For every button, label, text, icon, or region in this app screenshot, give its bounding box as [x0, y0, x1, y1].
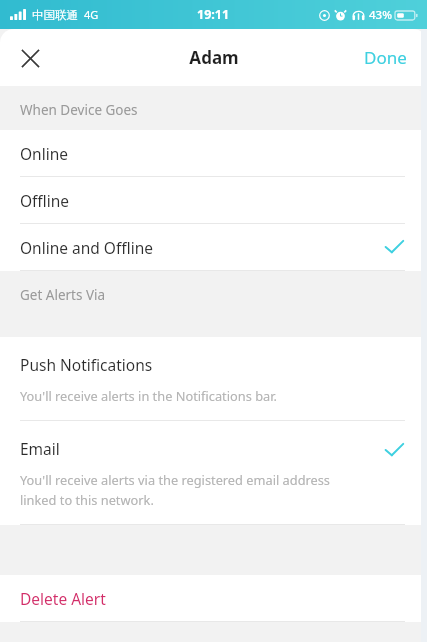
button[interactable]: Online and Offline [0, 224, 427, 271]
button[interactable]: Delete Alert [0, 575, 427, 622]
staticText: You'll receive alerts via the registered… [20, 471, 331, 488]
button[interactable]: Offline [0, 177, 427, 224]
staticText: linked to this network. [20, 491, 154, 508]
staticText: When Device Goes [20, 101, 138, 119]
other: Selected [383, 236, 405, 258]
staticText: Online and Offline [20, 237, 153, 258]
button[interactable]: Done [344, 29, 427, 86]
staticText: Get Alerts Via [20, 286, 106, 304]
staticText: 43% [369, 7, 392, 23]
staticText: Push Notifications [20, 354, 153, 375]
other: Selected [383, 439, 405, 461]
staticText: You'll receive alerts in the Notificatio… [20, 387, 277, 404]
button[interactable]: Push Notifications [0, 337, 427, 421]
staticText: Email [20, 438, 60, 459]
button[interactable]: Email [0, 421, 427, 525]
staticText: 中国联通 [32, 8, 78, 22]
button[interactable]: Close [8, 36, 52, 80]
staticText: Done [364, 46, 407, 69]
staticText: Adam [189, 46, 239, 69]
staticText: Offline [20, 190, 70, 211]
staticText: 19:11 [197, 6, 230, 23]
button[interactable]: Online [0, 130, 427, 177]
staticText: Delete Alert [20, 588, 106, 609]
staticText: 4G [84, 7, 99, 22]
staticText: Online [20, 143, 69, 164]
